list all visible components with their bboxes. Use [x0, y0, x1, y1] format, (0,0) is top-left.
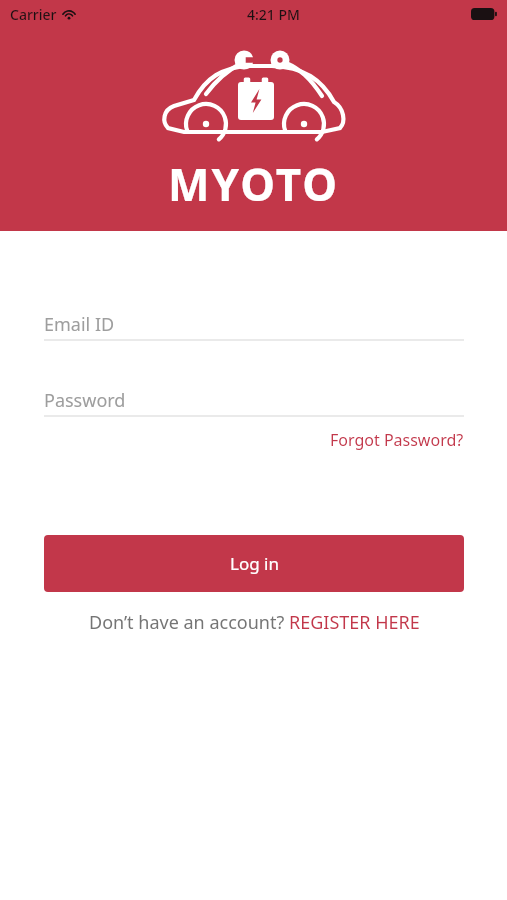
- staticText: MYOTO: [168, 154, 339, 214]
- staticText: Email ID: [44, 312, 115, 337]
- staticText: 4:21 PM: [247, 5, 300, 24]
- button[interactable]: Email ID: [44, 309, 464, 341]
- button[interactable]: Log in: [44, 535, 464, 592]
- staticText: Carrier: [10, 5, 57, 24]
- button[interactable]: Password: [44, 385, 464, 417]
- staticText: Forgot Password?: [330, 429, 464, 451]
- staticText: Don’t have an account?: [89, 610, 289, 635]
- button[interactable]: Forgot Password?: [330, 417, 464, 455]
- button[interactable]: Don’t have an account?: [44, 610, 464, 635]
- staticText: Log in: [230, 552, 279, 575]
- staticText: Password: [44, 388, 126, 413]
- staticText: REGISTER HERE: [289, 610, 420, 635]
